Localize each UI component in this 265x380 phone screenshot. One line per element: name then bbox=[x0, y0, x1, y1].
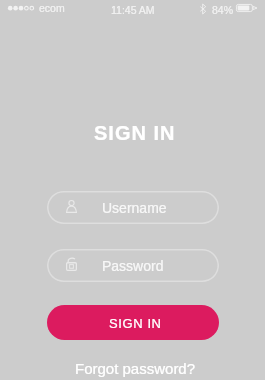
button[interactable]: SIGN IN bbox=[47, 305, 219, 340]
button[interactable]: Password bbox=[47, 249, 219, 282]
staticText: Forgot password? bbox=[75, 360, 196, 377]
button[interactable]: Forgot password? bbox=[67, 357, 204, 380]
staticText: Username bbox=[102, 200, 167, 216]
staticText: Password bbox=[102, 258, 164, 274]
staticText: SIGN IN bbox=[94, 122, 176, 144]
staticText: ecom bbox=[39, 2, 65, 14]
staticText: 11:45 AM bbox=[111, 4, 155, 16]
staticText: SIGN IN bbox=[109, 316, 162, 331]
button[interactable]: Username bbox=[47, 191, 219, 224]
staticText: 84% bbox=[212, 4, 234, 16]
